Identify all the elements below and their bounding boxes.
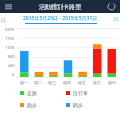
staticText: 活動體別卡路里 (39, 3, 81, 11)
button[interactable]: 騎步 (66, 102, 112, 108)
button[interactable]: Refresh (107, 2, 116, 11)
staticText: 週六 (93, 80, 101, 85)
staticText: 2015年5月25日 - 2015年5月31日 (23, 15, 98, 22)
staticText: 20 (113, 16, 119, 23)
button[interactable]: 2015年5月25日 - 2015年5月31日 (0, 13, 120, 26)
staticText: 週三 (48, 80, 56, 85)
button[interactable]: 走路 (20, 90, 66, 96)
staticText: 1100 (5, 45, 15, 50)
staticText: 880 (8, 54, 15, 59)
staticText: 走路 (27, 90, 37, 96)
button[interactable]: Menu (4, 2, 13, 11)
button[interactable]: 跑步 (20, 102, 66, 108)
staticText: 1750 (5, 36, 15, 41)
staticText: 週日 (108, 80, 116, 85)
staticText: 自行車 (73, 90, 88, 96)
button[interactable]: 自行車 (66, 90, 112, 96)
staticText: 440 (8, 63, 15, 68)
staticText: 週五 (78, 80, 86, 85)
staticText: 0 (12, 72, 15, 77)
staticText: 週二 (34, 80, 42, 85)
staticText: 跑步 (27, 102, 37, 108)
staticText: 2200 (5, 27, 15, 32)
staticText: 週一 (20, 80, 28, 85)
staticText: 週四 (63, 80, 71, 85)
staticText: 騎步 (73, 102, 83, 108)
staticText: 日 (1, 17, 6, 23)
